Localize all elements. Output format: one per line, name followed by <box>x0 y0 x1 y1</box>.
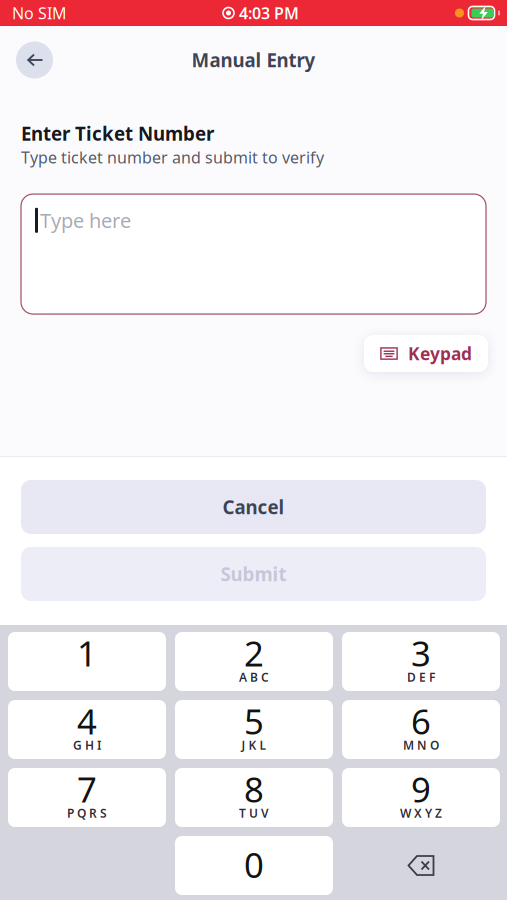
button[interactable]: Submit <box>21 547 486 601</box>
staticText: Cancel <box>222 495 284 519</box>
staticText: 2 <box>244 630 264 676</box>
staticText: 6 <box>411 698 431 744</box>
button[interactable]: 2 <box>175 632 333 691</box>
staticText: No SIM <box>12 2 67 24</box>
button[interactable]: 1 <box>8 632 166 691</box>
button[interactable]: 5 <box>175 700 333 759</box>
staticText: Keypad <box>408 342 472 365</box>
staticText: Submit <box>220 562 286 586</box>
staticText: A B C <box>239 669 269 685</box>
staticText: 7 <box>77 766 97 812</box>
button[interactable]: 7 <box>8 768 166 827</box>
staticText: 8 <box>244 766 264 812</box>
staticText: M N O <box>403 737 439 753</box>
staticText: 5 <box>244 698 264 744</box>
staticText: P Q R S <box>67 805 107 821</box>
staticText: W X Y Z <box>400 805 442 821</box>
staticText: G H I <box>73 737 101 753</box>
button[interactable]: 6 <box>342 700 500 759</box>
staticText: Type here <box>40 207 131 234</box>
staticText: Enter Ticket Number <box>21 121 214 146</box>
button[interactable]: 9 <box>342 768 500 827</box>
button[interactable]: 8 <box>175 768 333 827</box>
button[interactable]: 4 <box>8 700 166 759</box>
staticText: J K L <box>241 737 266 753</box>
staticText: 4 <box>77 698 97 744</box>
button[interactable]: Keypad <box>364 335 488 372</box>
button[interactable]: Cancel <box>21 480 486 534</box>
staticText: 3 <box>411 630 431 676</box>
staticText: Manual Entry <box>191 48 315 72</box>
staticText: 0 <box>244 841 264 887</box>
staticText: D E F <box>407 669 435 685</box>
staticText: 9 <box>411 766 431 812</box>
staticText: 4:03 PM <box>239 2 299 24</box>
staticText: Type ticket number and submit to verify <box>21 147 324 168</box>
button[interactable]: 3 <box>342 632 500 691</box>
button[interactable]: Delete <box>342 836 500 895</box>
button[interactable]: 0 <box>175 836 333 895</box>
staticText: 1 <box>77 630 97 676</box>
button[interactable]: Back <box>16 41 53 78</box>
staticText: T U V <box>239 805 269 821</box>
